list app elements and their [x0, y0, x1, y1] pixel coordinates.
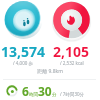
- button[interactable]: Calories: [48, 0, 96, 42]
- staticText: 30: [38, 83, 52, 99]
- staticText: 13,574: [1, 42, 46, 61]
- staticText: 2,105: [53, 42, 90, 61]
- staticText: 分: [52, 92, 57, 98]
- button[interactable]: Steps: [0, 0, 48, 42]
- button[interactable]: 6: [0, 82, 100, 99]
- staticText: 距離 9.8km: [0, 68, 100, 75]
- staticText: / 7時間30分: [60, 91, 85, 97]
- staticText: / 2,532 kcal: [60, 60, 84, 66]
- staticText: / 4,000 歩: [13, 60, 34, 66]
- staticText: 時間: [29, 92, 38, 98]
- staticText: 6: [22, 83, 29, 99]
